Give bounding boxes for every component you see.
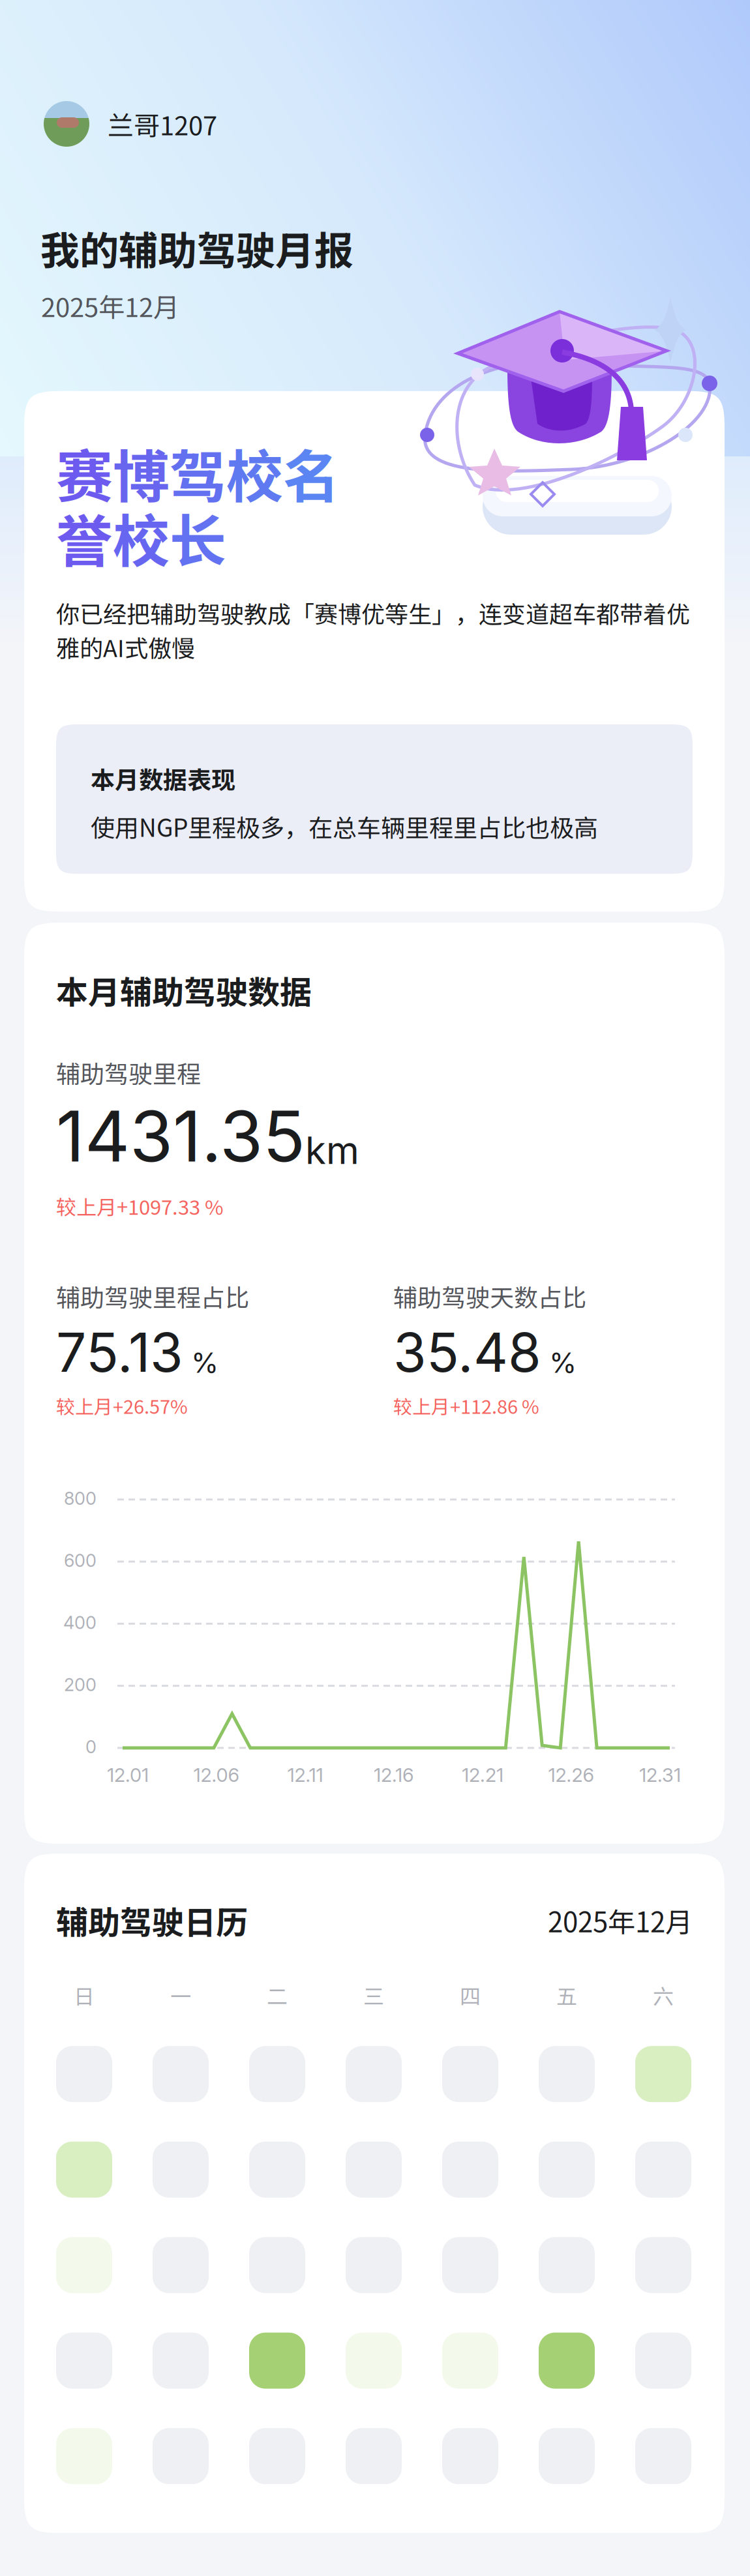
staticText: 三 xyxy=(363,1980,384,2010)
staticText: 使用NGP里程极多，在总车辆里程里占比也极高 xyxy=(91,809,598,844)
staticText: 12.16 xyxy=(374,1764,414,1786)
staticText: 2025年12月 xyxy=(41,287,179,325)
staticText: 12.21 xyxy=(462,1764,503,1786)
staticText: 博 xyxy=(113,431,170,514)
staticText: 较上月+1097.33 % xyxy=(56,1191,224,1221)
staticText: 赛 xyxy=(56,431,113,514)
staticText: 200 xyxy=(64,1674,97,1695)
staticText: 12.26 xyxy=(548,1764,594,1786)
staticText: 1431.35 xyxy=(56,1094,305,1178)
staticText: 400 xyxy=(63,1612,97,1633)
staticText: 辅助驾驶里程占比 xyxy=(56,1279,249,1314)
staticText: 辅助驾驶里程 xyxy=(56,1055,201,1090)
staticText: 本月辅助驾驶数据 xyxy=(56,967,312,1013)
staticText: 你已经把辅助驾驶教成「赛博优等生」，连变道超车都带着优雅的AI式傲慢 xyxy=(56,596,690,664)
staticText: 六 xyxy=(653,1980,674,2010)
staticText: 12.01 xyxy=(107,1764,149,1786)
staticText: 12.06 xyxy=(193,1764,240,1786)
staticText: 二 xyxy=(267,1980,288,2010)
staticText: 一 xyxy=(170,1980,191,2010)
staticText: 12.31 xyxy=(639,1764,681,1786)
button[interactable]: 兰哥1207 xyxy=(44,101,217,147)
staticText: 校 xyxy=(113,496,170,578)
staticText: 誉 xyxy=(56,496,113,578)
staticText: 兰哥1207 xyxy=(108,105,217,143)
staticText: 日 xyxy=(74,1980,95,2010)
staticText: 辅助驾驶天数占比 xyxy=(393,1279,586,1314)
staticText: 较上月+26.57% xyxy=(56,1392,188,1419)
staticText: 辅助驾驶日历 xyxy=(56,1897,248,1944)
staticText: 800 xyxy=(64,1488,97,1509)
staticText: 2025年12月 xyxy=(548,1900,693,1940)
staticText: % xyxy=(549,1346,577,1380)
staticText: 五 xyxy=(556,1980,577,2010)
staticText: 校 xyxy=(226,431,283,514)
staticText: 较上月+112.86 % xyxy=(393,1392,539,1419)
staticText: km xyxy=(305,1127,359,1173)
staticText: 0 xyxy=(85,1736,97,1757)
staticText: 驾 xyxy=(170,431,226,514)
staticText: 四 xyxy=(460,1980,481,2010)
staticText: 12.11 xyxy=(287,1764,323,1786)
staticText: 75.13 xyxy=(56,1320,183,1385)
staticText: % xyxy=(191,1346,218,1380)
staticText: 本月数据表现 xyxy=(91,761,235,796)
staticText: 我的辅助驾驶月报 xyxy=(40,220,353,276)
staticText: 600 xyxy=(64,1550,97,1571)
staticText: 35.48 xyxy=(393,1320,541,1385)
staticText: 长 xyxy=(170,496,226,578)
staticText: 名 xyxy=(283,431,340,514)
